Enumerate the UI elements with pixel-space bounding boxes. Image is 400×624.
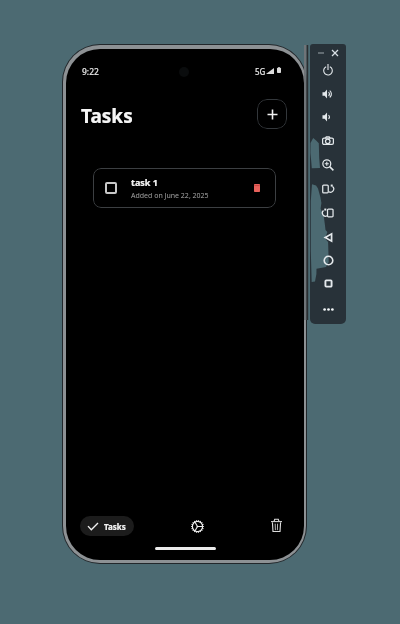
button[interactable]: Minimize [314, 46, 328, 60]
button[interactable]: Add task [257, 99, 287, 129]
button[interactable]: Rotate right [319, 204, 337, 222]
staticText: Tasks [81, 103, 133, 129]
staticText: 9:22 [82, 66, 99, 78]
button[interactable]: Screenshot [319, 132, 337, 150]
button[interactable]: Zoom [319, 156, 337, 174]
button[interactable]: Tasks [80, 516, 134, 536]
button[interactable]: More [319, 300, 337, 318]
button[interactable]: Settings [186, 515, 208, 537]
button[interactable]: Mark task complete [93, 168, 276, 208]
button[interactable]: Power [319, 61, 337, 79]
button[interactable]: Back [319, 228, 337, 246]
staticText: Tasks [104, 521, 126, 532]
button[interactable]: Volume up [319, 85, 337, 103]
staticText: Added on June 22, 2025 [131, 191, 209, 201]
button[interactable]: Rotate left [319, 180, 337, 198]
staticText: task 1 [131, 176, 158, 188]
button[interactable]: Home [319, 251, 337, 269]
button[interactable]: Volume down [319, 108, 337, 126]
button[interactable]: Close [328, 46, 342, 60]
button[interactable]: Overview [319, 274, 337, 292]
button[interactable]: Delete all tasks [265, 514, 287, 536]
button[interactable]: Delete task [247, 178, 267, 198]
button[interactable]: Mark task complete [105, 182, 117, 194]
staticText: 5G [255, 66, 266, 77]
